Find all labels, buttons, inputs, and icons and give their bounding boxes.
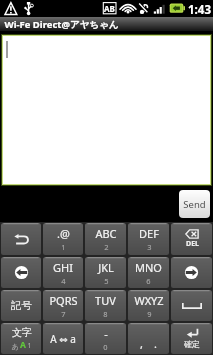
staticText: 記号	[11, 299, 32, 312]
staticText: 6	[146, 276, 151, 286]
staticText: 1	[27, 341, 32, 351]
staticText: JKL	[98, 260, 114, 275]
staticText: 2	[104, 242, 109, 252]
button[interactable]: Cursor right	[171, 257, 212, 288]
staticText: -	[104, 326, 108, 341]
button[interactable]: 記号	[1, 290, 41, 321]
staticText: 4	[61, 276, 66, 286]
button[interactable]: Space	[171, 290, 212, 321]
staticText: PQRS	[49, 293, 78, 308]
button[interactable]: 確定	[171, 323, 212, 354]
staticText: WXYZ	[134, 293, 164, 308]
staticText: あ	[11, 342, 19, 351]
staticText: .	[154, 336, 157, 351]
staticText: ABC	[95, 226, 117, 241]
staticText: 5	[104, 276, 109, 286]
button[interactable]: PQRS	[43, 290, 83, 321]
staticText: DEF	[139, 226, 159, 241]
button[interactable]: 文字	[1, 323, 41, 354]
button[interactable]: ABC	[85, 223, 126, 255]
button[interactable]: JKL	[85, 257, 126, 288]
staticText: 1	[61, 242, 66, 252]
staticText: GHI	[53, 260, 73, 275]
button[interactable]: MNO	[128, 257, 169, 288]
staticText: TUV	[95, 293, 116, 308]
staticText: ,	[140, 336, 143, 351]
staticText: Send	[183, 198, 206, 211]
button[interactable]: Cursor left	[1, 257, 41, 288]
button[interactable]: Send	[179, 190, 210, 218]
staticText: 8	[103, 309, 108, 319]
button[interactable]: GHI	[43, 257, 83, 288]
staticText: 3	[147, 242, 152, 252]
button[interactable]: Undo	[1, 223, 41, 255]
staticText: A ⇔ a	[50, 332, 76, 346]
staticText: 9	[147, 309, 152, 319]
button[interactable]	[3, 36, 210, 184]
staticText: .@	[57, 226, 70, 241]
staticText: 0	[103, 342, 108, 352]
button[interactable]: A ⇔ a	[43, 323, 83, 354]
staticText: MNO	[135, 260, 162, 275]
button[interactable]: -	[85, 323, 126, 354]
staticText: 7	[61, 309, 66, 319]
staticText: 1:43	[188, 2, 211, 18]
button[interactable]: WXYZ	[128, 290, 169, 321]
staticText: DEL	[186, 239, 199, 249]
staticText: A	[20, 339, 26, 351]
button[interactable]: DEL	[171, 223, 212, 255]
button[interactable]: .@	[43, 223, 83, 255]
staticText: AB	[104, 3, 115, 14]
staticText: 確定	[184, 339, 200, 349]
button[interactable]: ,	[128, 323, 169, 354]
button[interactable]: DEF	[128, 223, 169, 255]
staticText: Wi-Fe Direct@アヤちゃん	[4, 18, 119, 31]
staticText: 文字	[12, 326, 32, 339]
button[interactable]: TUV	[85, 290, 126, 321]
